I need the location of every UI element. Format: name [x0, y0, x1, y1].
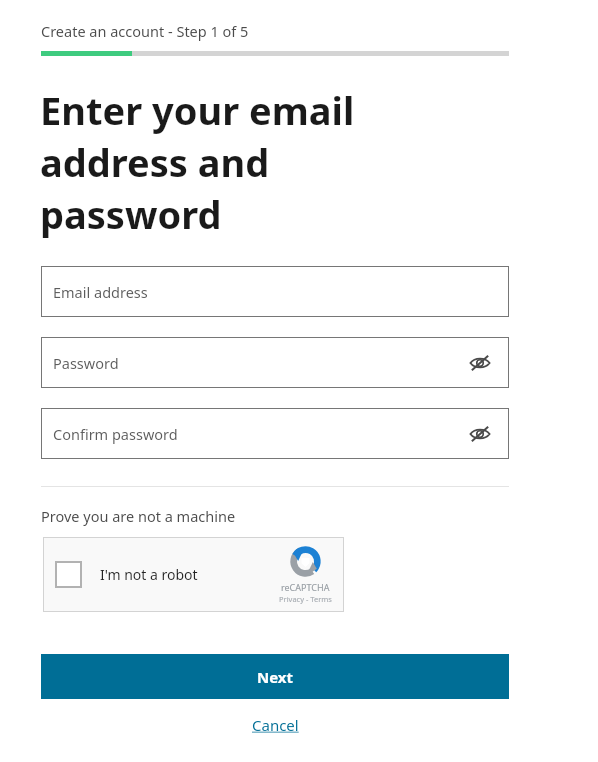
- staticText: Password: [53, 353, 465, 373]
- staticText: Privacy - Terms: [279, 594, 332, 604]
- button[interactable]: Password: [41, 337, 509, 388]
- staticText: address and: [40, 136, 270, 188]
- staticText: I'm not a robot: [100, 565, 198, 584]
- button[interactable]: Cancel: [244, 711, 307, 739]
- button[interactable]: Show password: [465, 348, 495, 378]
- staticText: Enter your email: [40, 84, 355, 136]
- staticText: reCAPTCHA: [281, 581, 330, 593]
- staticText: Email address: [53, 282, 495, 302]
- button[interactable]: Show password: [465, 419, 495, 449]
- button[interactable]: I'm not a robot checkbox: [55, 561, 82, 588]
- staticText: Next: [257, 667, 294, 687]
- button[interactable]: Email address: [41, 266, 509, 317]
- staticText: Prove you are not a machine: [41, 506, 236, 526]
- staticText: password: [40, 188, 222, 240]
- button[interactable]: Next: [41, 654, 509, 699]
- staticText: Confirm password: [53, 424, 465, 444]
- staticText: Cancel: [252, 715, 299, 735]
- button[interactable]: I'm not a robot checkbox: [43, 537, 344, 612]
- staticText: Create an account - Step 1 of 5: [41, 21, 249, 41]
- button[interactable]: Confirm password: [41, 408, 509, 459]
